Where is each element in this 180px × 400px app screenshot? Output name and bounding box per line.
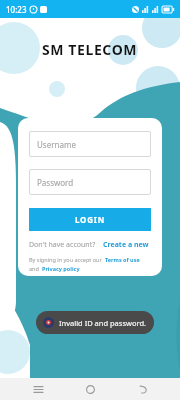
button[interactable]: LOGIN	[29, 208, 151, 231]
staticText: LOGIN	[75, 214, 106, 225]
staticText: Terms of use	[105, 256, 140, 263]
staticText: By signing in you accept our	[29, 256, 102, 263]
staticText: Don't have account?	[29, 240, 96, 250]
button[interactable]: Username	[29, 131, 151, 157]
staticText: Privacy policy	[42, 265, 80, 272]
button[interactable]: Back	[128, 378, 158, 400]
staticText: Create a new	[103, 240, 149, 250]
button[interactable]: Password	[29, 169, 151, 195]
staticText: 10:23	[6, 4, 27, 15]
button[interactable]: Home	[75, 378, 105, 400]
staticText: SM TELECOM	[42, 40, 138, 59]
button[interactable]: Privacy policy	[42, 265, 80, 272]
other: App icon	[43, 317, 54, 328]
button[interactable]: Terms of use	[105, 256, 140, 263]
staticText: Username	[37, 139, 76, 150]
staticText: Invalid ID and password.	[59, 318, 147, 328]
staticText: Password	[37, 177, 74, 188]
button[interactable]: Recent apps	[23, 378, 53, 400]
button[interactable]: App icon	[36, 311, 154, 334]
staticText: and	[29, 265, 39, 272]
button[interactable]: Create a new	[103, 240, 149, 250]
